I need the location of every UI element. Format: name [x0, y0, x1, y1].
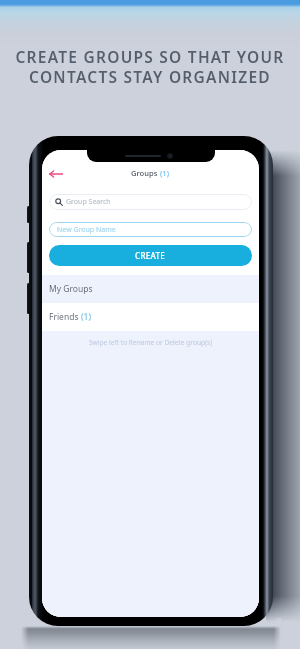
staticText: New Group Name — [57, 225, 116, 235]
staticText: Friends — [49, 311, 81, 323]
button[interactable]: Group Search — [49, 194, 252, 210]
staticText: CREATE GROUPS SO THAT YOUR CONTACTS STAY… — [0, 46, 300, 88]
staticText: (1) — [160, 168, 170, 178]
staticText: (1) — [81, 311, 91, 323]
button[interactable]: New Group Name — [49, 222, 252, 237]
button[interactable]: CREATE — [49, 245, 252, 266]
staticText: Group Search — [66, 197, 111, 207]
staticText: CREATE — [135, 250, 166, 261]
button[interactable]: Back — [46, 165, 66, 183]
staticText: Groups — [131, 168, 160, 178]
button[interactable]: Friends — [42, 303, 259, 331]
staticText: My Groups — [49, 283, 93, 295]
staticText: Swipe left to Rename or Delete group(s) — [89, 338, 213, 347]
